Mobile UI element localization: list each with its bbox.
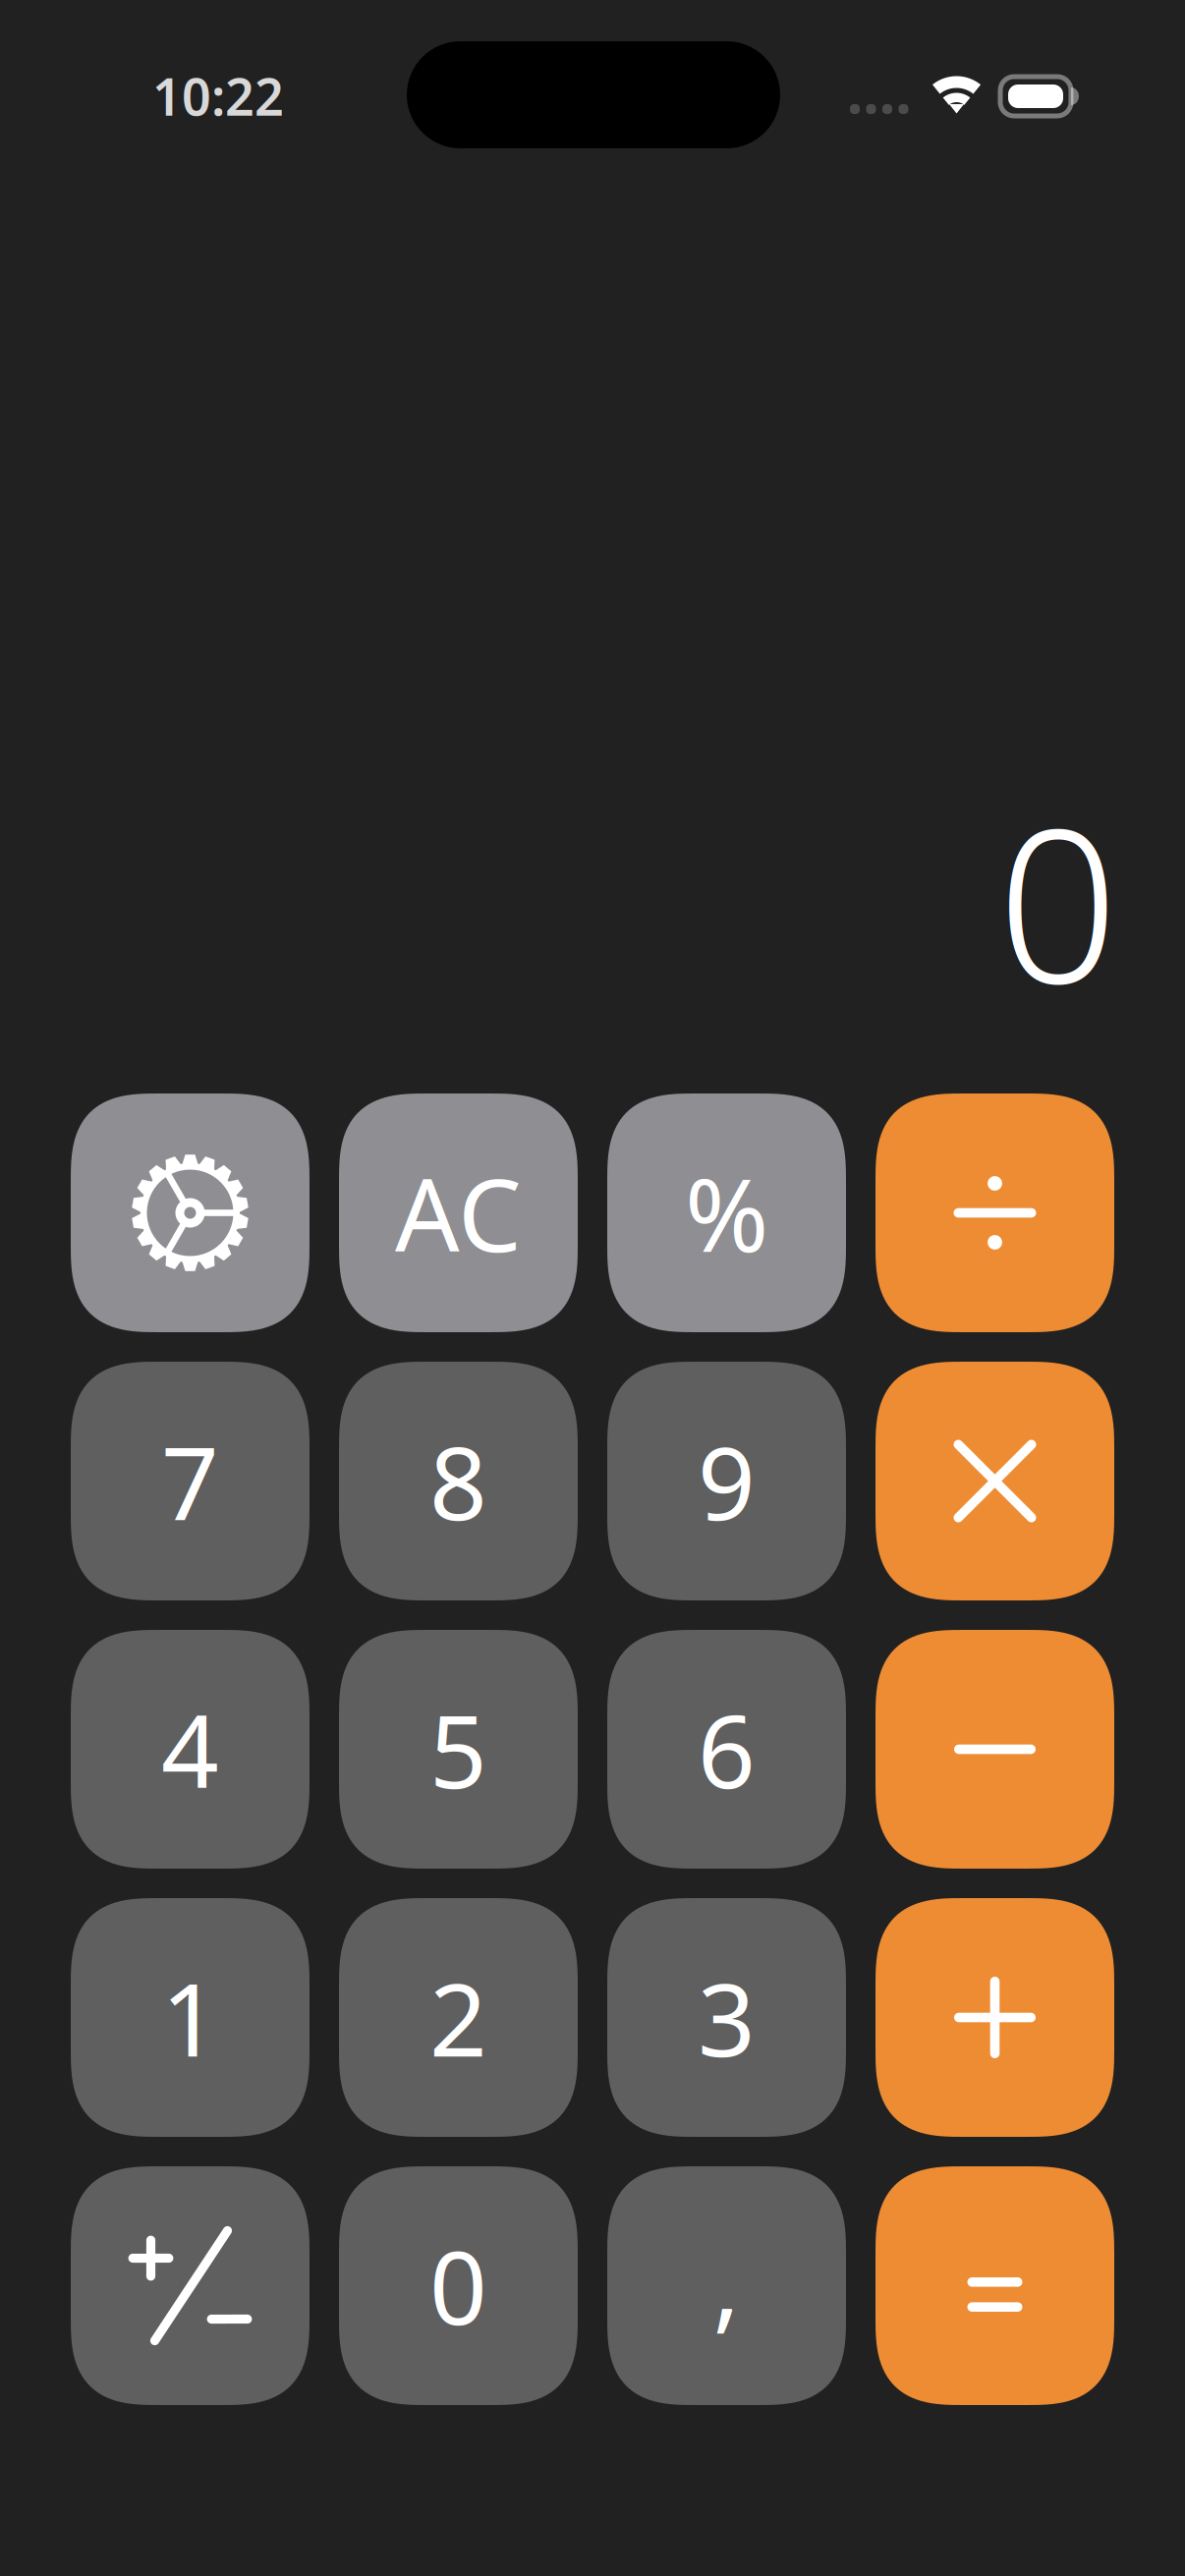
button[interactable]: 3 <box>607 1898 846 2137</box>
button[interactable]: , <box>607 2166 846 2405</box>
button[interactable]: 7 <box>71 1362 310 1600</box>
button[interactable]: Scientific calculator <box>71 1093 310 1332</box>
staticText: 6 <box>698 1682 756 1816</box>
button[interactable]: Subtract <box>875 1630 1114 1869</box>
staticText: 3 <box>698 1950 756 2084</box>
staticText: 1 <box>161 1950 219 2084</box>
staticText: 0 <box>429 2219 487 2353</box>
button[interactable]: 2 <box>339 1898 578 2137</box>
staticText: % <box>685 1146 768 1280</box>
button[interactable]: 9 <box>607 1362 846 1600</box>
button[interactable]: % <box>607 1093 846 1332</box>
staticText: 10:22 <box>152 62 284 130</box>
button[interactable]: 5 <box>339 1630 578 1869</box>
button[interactable]: Divide <box>875 1093 1114 1332</box>
staticText: , <box>713 2215 740 2349</box>
button[interactable]: Add <box>875 1898 1114 2137</box>
staticText: AC <box>395 1146 522 1280</box>
button[interactable]: AC <box>339 1093 578 1332</box>
staticText: 9 <box>698 1414 756 1548</box>
staticText: 8 <box>429 1414 487 1548</box>
staticText: 4 <box>161 1682 219 1816</box>
button[interactable]: Equals <box>875 2166 1114 2405</box>
staticText: 0 <box>997 760 1118 1041</box>
button[interactable]: 6 <box>607 1630 846 1869</box>
button[interactable]: 8 <box>339 1362 578 1600</box>
button[interactable]: Multiply <box>875 1362 1114 1600</box>
button[interactable]: 1 <box>71 1898 310 2137</box>
button[interactable]: Plus minus <box>71 2166 310 2405</box>
button[interactable]: 4 <box>71 1630 310 1869</box>
staticText: 2 <box>429 1950 487 2084</box>
button[interactable]: 0 <box>339 2166 578 2405</box>
staticText: 7 <box>161 1414 219 1548</box>
staticText: 5 <box>429 1682 487 1816</box>
